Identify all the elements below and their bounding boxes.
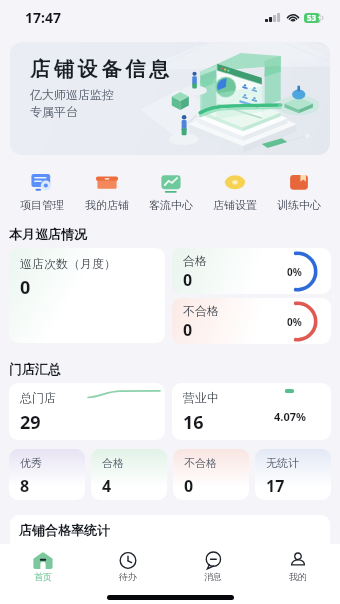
- staticText: 消息: [204, 571, 222, 582]
- staticText: 首页: [34, 571, 52, 582]
- staticText: 本月巡店情况: [9, 226, 87, 242]
- staticText: 不合格: [183, 303, 219, 318]
- staticText: 训练中心: [277, 198, 321, 212]
- staticText: 合格: [183, 253, 207, 268]
- button[interactable]: 店铺合格率统计: [10, 515, 330, 604]
- staticText: 门店汇总: [9, 361, 61, 377]
- staticText: 店铺合格率统计: [19, 522, 110, 538]
- staticText: 店铺设备信息: [30, 57, 173, 82]
- button[interactable]: 巡店次数（月度）: [9, 248, 165, 343]
- staticText: 专属平台: [30, 104, 78, 119]
- staticText: 0: [20, 275, 31, 300]
- button[interactable]: 不合格: [173, 449, 249, 500]
- staticText: 无统计: [266, 456, 299, 470]
- staticText: 4: [102, 475, 112, 497]
- staticText: 4.07%: [274, 409, 306, 424]
- button[interactable]: 我的店铺: [74, 172, 139, 212]
- staticText: 客流中心: [149, 198, 193, 212]
- staticText: 项目管理: [20, 198, 64, 212]
- button[interactable]: 消息: [170, 552, 255, 582]
- staticText: 16: [183, 410, 204, 435]
- staticText: 总门店: [20, 390, 56, 405]
- staticText: 0%: [287, 315, 302, 329]
- button[interactable]: 店铺设备信息: [10, 42, 330, 155]
- staticText: 0: [183, 319, 193, 341]
- staticText: 待办: [119, 571, 137, 582]
- button[interactable]: 优秀: [9, 449, 85, 500]
- staticText: 我的店铺: [85, 198, 129, 212]
- staticText: 53: [307, 12, 317, 23]
- button[interactable]: 首页: [0, 552, 85, 582]
- staticText: 优秀: [20, 456, 42, 470]
- button[interactable]: 店铺设置: [203, 172, 267, 212]
- button[interactable]: 无统计: [255, 449, 331, 500]
- button[interactable]: 合格: [172, 248, 331, 294]
- button[interactable]: 不合格: [172, 298, 331, 344]
- staticText: 巡店次数（月度）: [20, 256, 116, 271]
- staticText: 29: [20, 410, 41, 435]
- staticText: 17:47: [25, 8, 61, 27]
- staticText: 0: [184, 475, 194, 497]
- staticText: 0: [183, 269, 193, 291]
- staticText: 营业中: [183, 390, 219, 405]
- staticText: 合格: [102, 456, 124, 470]
- button[interactable]: 营业中: [172, 383, 331, 440]
- staticText: 我的: [289, 571, 307, 582]
- staticText: 8: [20, 475, 30, 497]
- button[interactable]: 客流中心: [139, 172, 203, 212]
- button[interactable]: 待办: [85, 552, 170, 582]
- button[interactable]: 训练中心: [267, 172, 331, 212]
- button[interactable]: 总门店: [9, 383, 165, 440]
- button[interactable]: 项目管理: [9, 172, 74, 212]
- button[interactable]: 合格: [91, 449, 167, 500]
- staticText: 不合格: [184, 456, 217, 470]
- staticText: 亿大师巡店监控: [30, 87, 114, 102]
- staticText: 17: [266, 475, 285, 497]
- staticText: 0%: [287, 265, 302, 279]
- button[interactable]: 我的: [255, 552, 340, 582]
- staticText: 店铺设置: [213, 198, 257, 212]
